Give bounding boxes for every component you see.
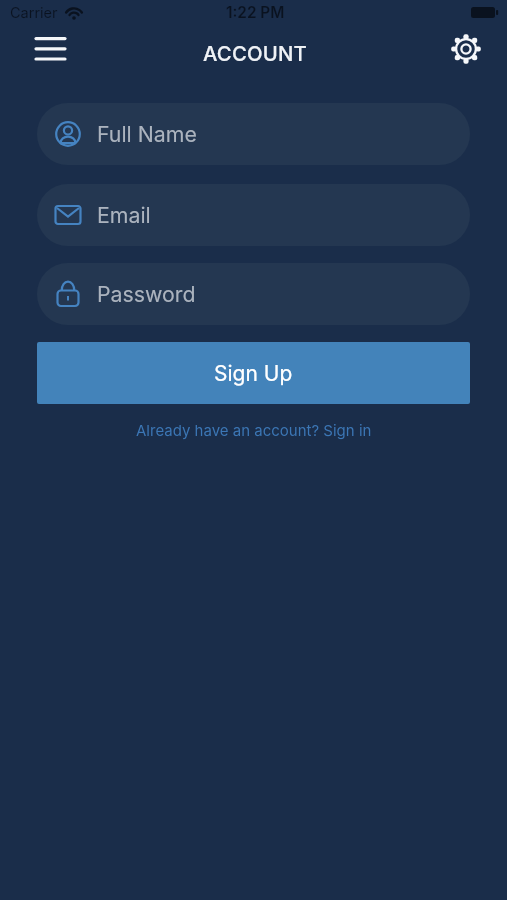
staticText: Sign Up (214, 361, 293, 386)
button[interactable]: Sign Up (37, 342, 470, 404)
staticText: Carrier (10, 4, 58, 22)
button[interactable] (444, 27, 488, 71)
staticText: ACCOUNT (203, 41, 308, 66)
staticText: 1:22 PM (226, 3, 285, 22)
button[interactable]: Password (37, 263, 470, 325)
staticText: Email (97, 202, 151, 228)
button[interactable]: Full Name (37, 103, 470, 165)
staticText: Password (97, 281, 196, 307)
button[interactable] (28, 27, 72, 71)
button[interactable]: Already have an account? Sign in (136, 421, 372, 439)
button[interactable]: Email (37, 184, 470, 246)
staticText: Full Name (97, 121, 197, 147)
staticText: Already have an account? Sign in (136, 421, 372, 439)
